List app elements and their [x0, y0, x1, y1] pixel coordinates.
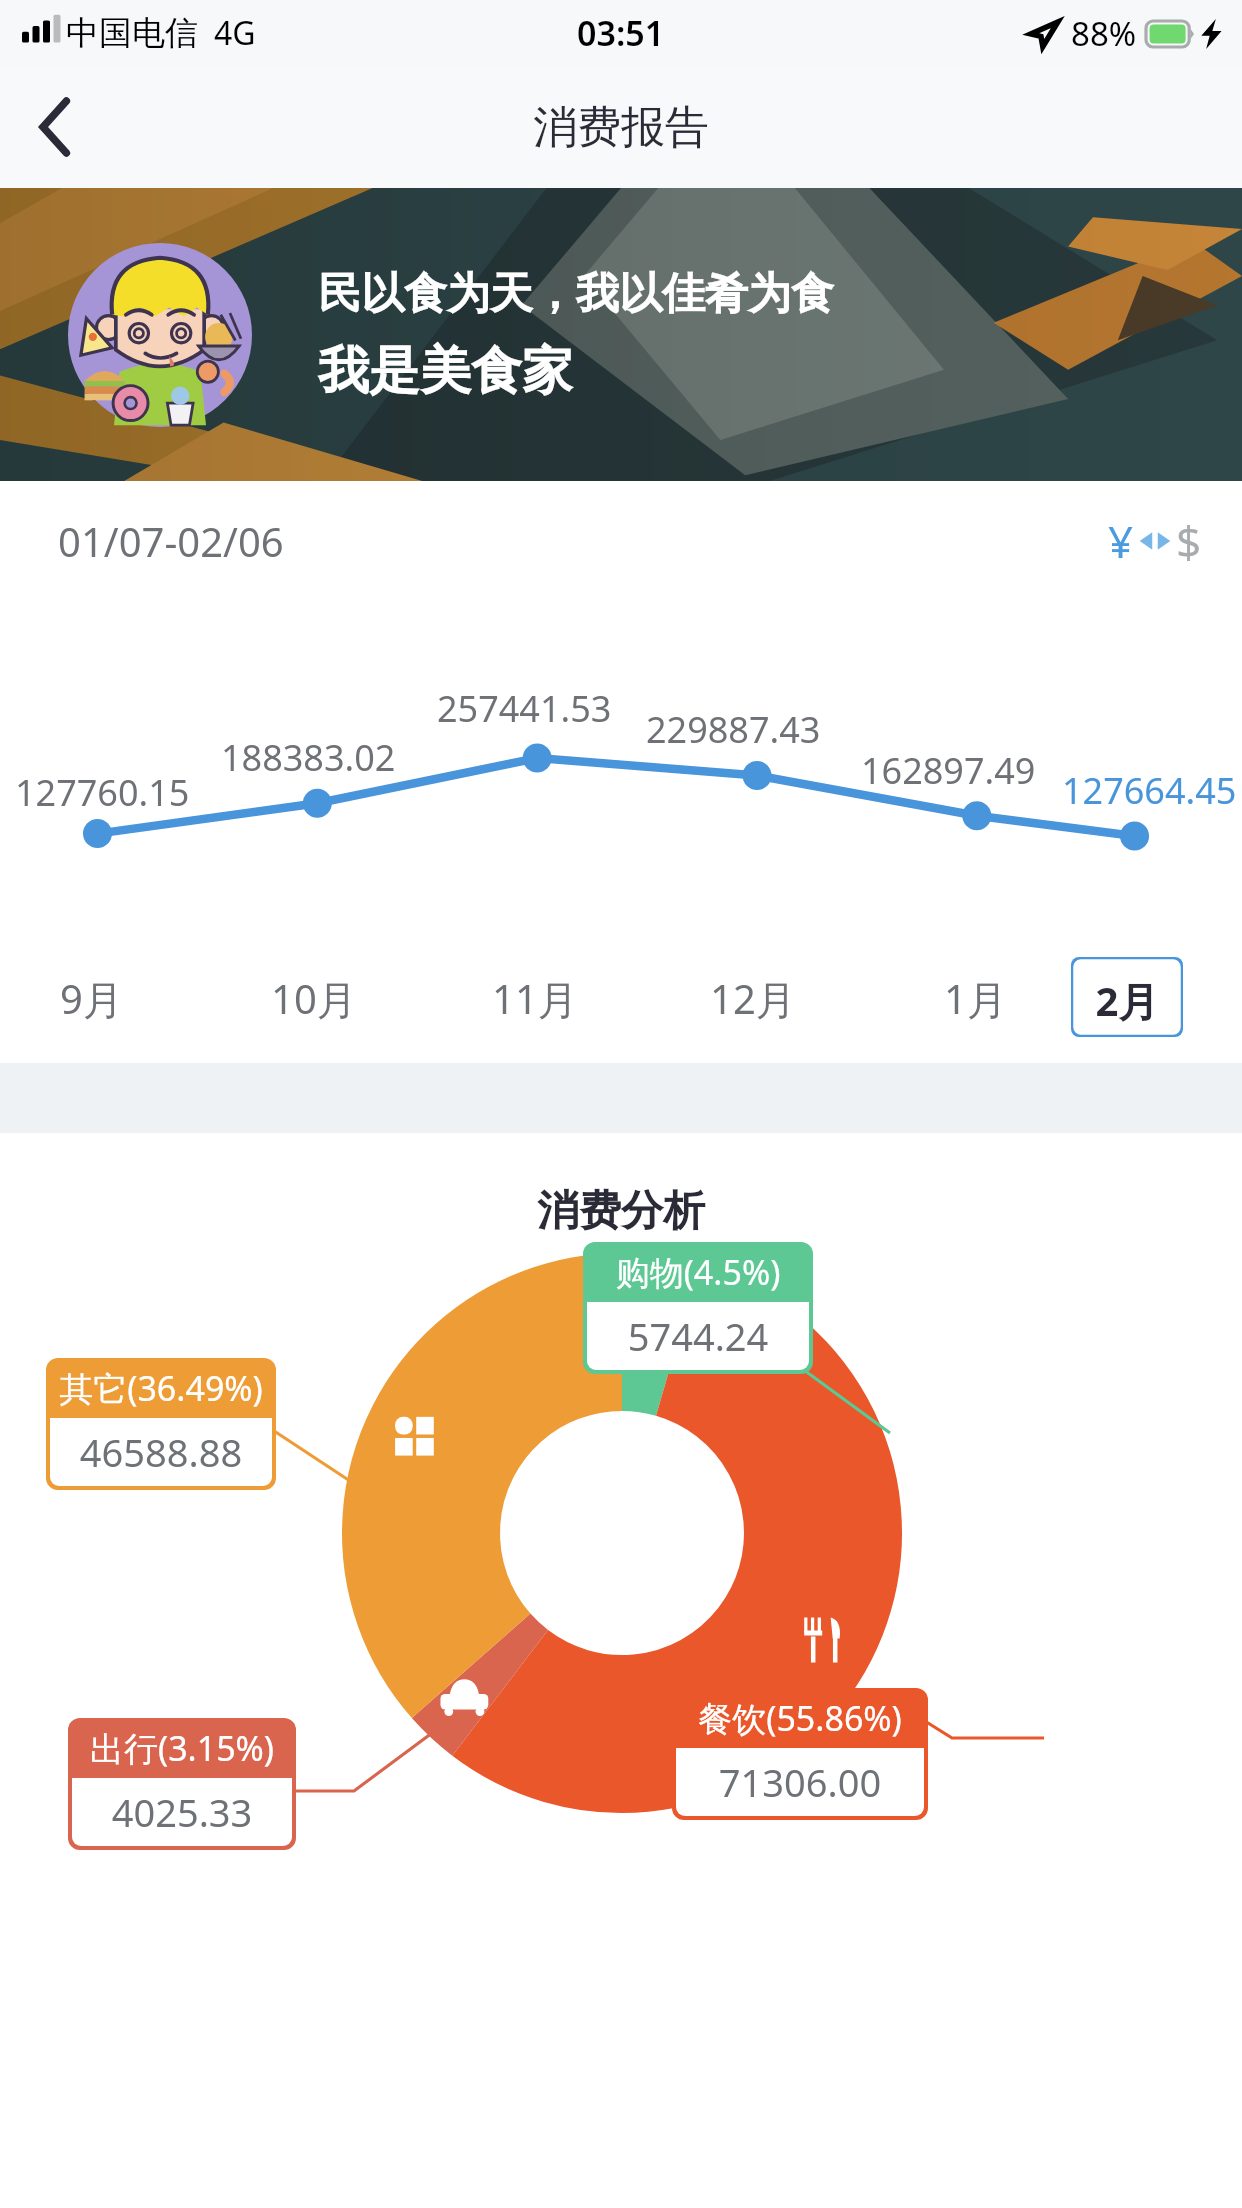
button[interactable]: Back: [0, 72, 110, 182]
staticText: 188383.02: [221, 733, 396, 782]
staticText: 88%: [1071, 11, 1137, 56]
staticText: 购物(4.5%): [593, 1249, 803, 1295]
staticText: 中国电信: [66, 12, 198, 54]
staticText: 5744.24: [595, 1310, 801, 1362]
staticText: 127664.45: [1062, 766, 1237, 815]
staticText: 2月: [1071, 973, 1183, 1037]
staticText: ¥: [1108, 511, 1134, 571]
button[interactable]: 民以食为天，我以佳肴为食: [0, 188, 1242, 481]
staticText: 4025.33: [80, 1786, 284, 1838]
staticText: $: [1176, 511, 1202, 571]
staticText: 消费分析: [0, 1185, 1242, 1238]
staticText: 71306.00: [684, 1756, 916, 1808]
button[interactable]: 餐饮(55.86%): [672, 1688, 928, 1820]
staticText: 162897.49: [861, 746, 1036, 795]
button[interactable]: 1月: [944, 971, 1007, 1026]
button[interactable]: 出行(3.15%): [68, 1718, 296, 1850]
staticText: 46588.88: [58, 1426, 264, 1478]
staticText: 4G: [214, 11, 256, 55]
button[interactable]: 9月: [60, 971, 123, 1026]
button[interactable]: 购物(4.5%): [583, 1242, 813, 1374]
staticText: 03:51: [577, 10, 665, 56]
button[interactable]: 10月: [271, 971, 357, 1026]
staticText: 餐饮(55.86%): [682, 1695, 918, 1741]
staticText: 229887.43: [646, 705, 821, 754]
staticText: 其它(36.49%): [56, 1365, 266, 1411]
button[interactable]: 2月: [1071, 957, 1183, 1037]
staticText: 257441.53: [437, 684, 612, 733]
button[interactable]: 其它(36.49%): [46, 1358, 276, 1490]
button[interactable]: Switch currency: [1100, 503, 1210, 579]
button[interactable]: 11月: [492, 971, 578, 1026]
staticText: 民以食为天，我以佳肴为食: [318, 267, 834, 321]
staticText: 消费报告: [533, 100, 709, 155]
staticText: 127760.15: [15, 768, 190, 817]
button[interactable]: 12月: [710, 971, 796, 1026]
staticText: 我是美食家: [318, 339, 573, 403]
staticText: 出行(3.15%): [78, 1725, 286, 1771]
staticText: 01/07-02/06: [58, 514, 284, 568]
